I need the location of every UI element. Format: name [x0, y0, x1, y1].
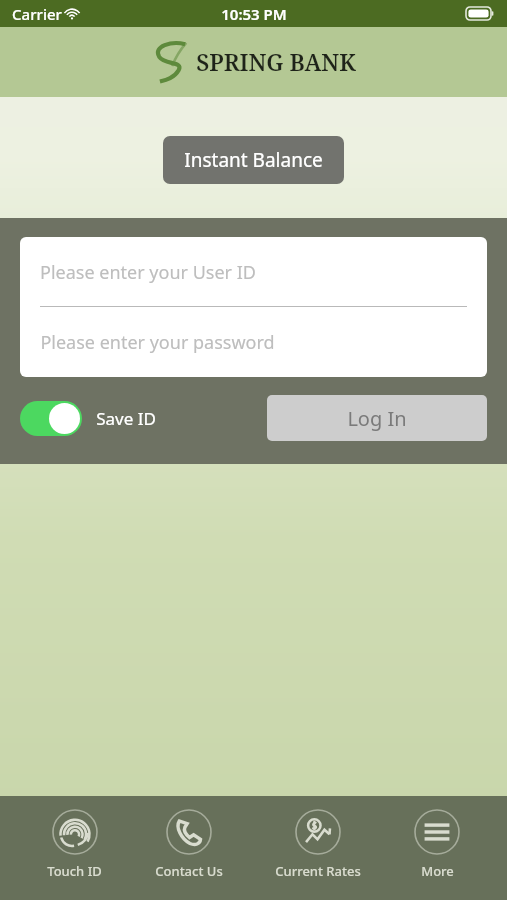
staticText: Carrier [12, 4, 62, 24]
button[interactable]: Contact Us [149, 796, 229, 886]
button[interactable]: Instant Balance [163, 136, 344, 184]
staticText: Save ID [96, 407, 156, 430]
button[interactable]: Log In [267, 395, 487, 441]
staticText: Contact Us [155, 862, 223, 880]
staticText: SPRING BANK [196, 46, 356, 77]
staticText: Please enter your password [40, 330, 275, 355]
button[interactable]: Save ID [20, 401, 156, 436]
button[interactable]: Please enter your User ID [20, 237, 487, 307]
button[interactable]: Touch ID [41, 796, 108, 886]
button[interactable]: Current Rates [269, 796, 367, 886]
button[interactable]: Please enter your password [20, 307, 487, 377]
staticText: Instant Balance [184, 147, 323, 173]
staticText: 10:53 PM [221, 4, 287, 24]
staticText: Touch ID [47, 862, 102, 880]
staticText: Please enter your User ID [40, 260, 256, 285]
staticText: Log In [347, 405, 407, 432]
button[interactable]: More [408, 796, 466, 886]
staticText: More [421, 862, 454, 880]
staticText: Current Rates [275, 862, 361, 880]
